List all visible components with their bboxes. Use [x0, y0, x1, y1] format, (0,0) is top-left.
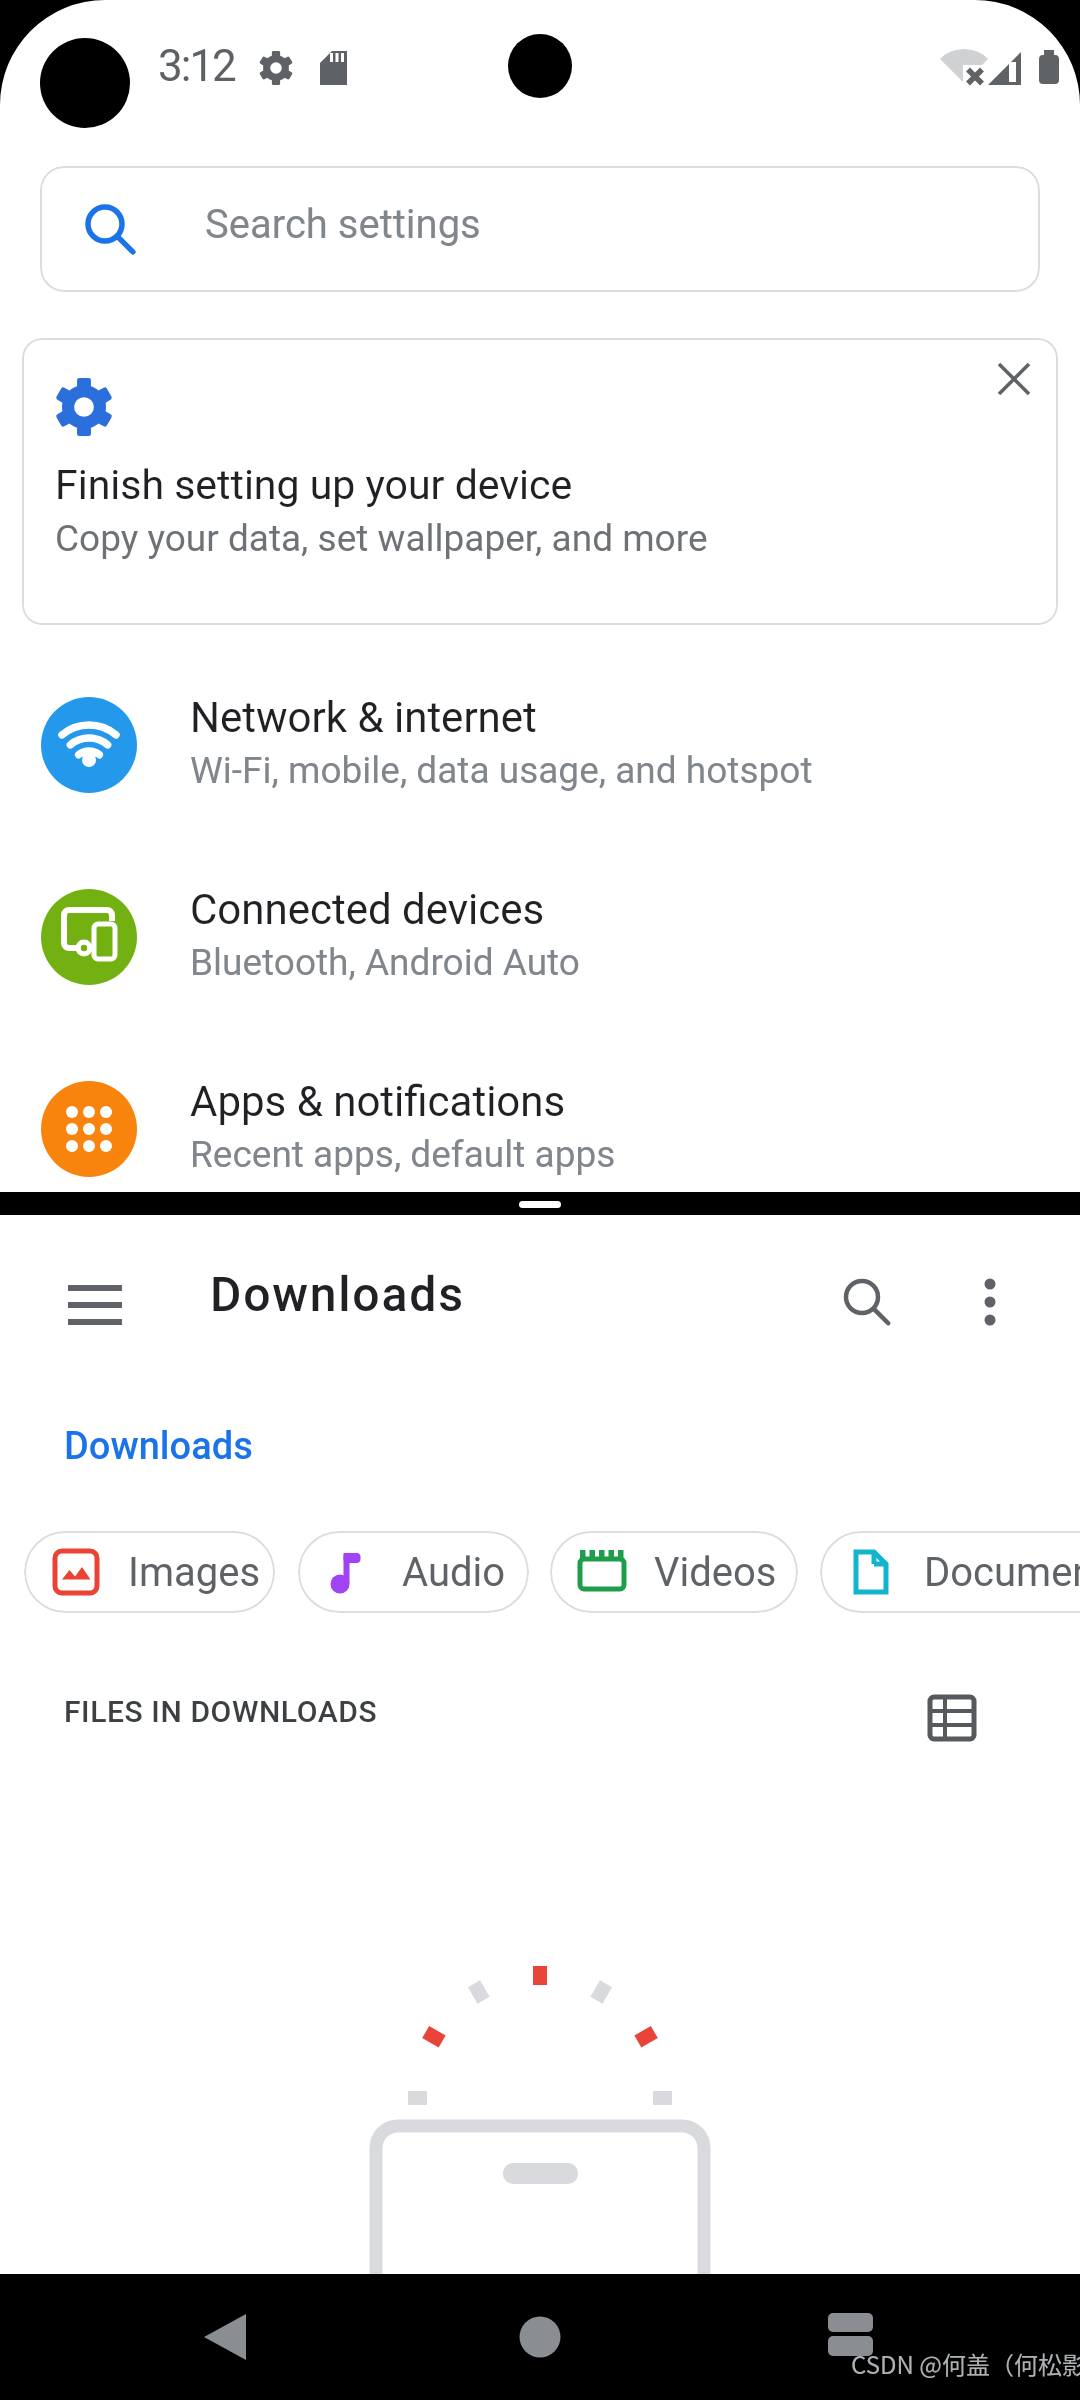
- button[interactable]: [790, 2290, 910, 2384]
- button[interactable]: [982, 348, 1052, 418]
- button[interactable]: Downloads: [50, 1415, 270, 1485]
- staticText: CSDN @何盖（何松影）: [851, 2346, 1080, 2381]
- button[interactable]: Videos: [550, 1531, 798, 1613]
- staticText: Downloads: [64, 1424, 253, 1469]
- staticText: Videos: [654, 1549, 777, 1596]
- button[interactable]: [170, 2290, 290, 2384]
- button[interactable]: Search settings: [40, 166, 1040, 292]
- staticText: 3:12: [158, 40, 235, 92]
- button[interactable]: Finish setting up your device: [22, 338, 1058, 625]
- staticText: FILES IN DOWNLOADS: [64, 1694, 378, 1729]
- button[interactable]: [480, 2290, 600, 2384]
- button[interactable]: Network & internet: [0, 649, 1080, 841]
- button[interactable]: [950, 1258, 1030, 1348]
- staticText: Recent apps, default apps: [190, 1133, 616, 1176]
- staticText: Bluetooth, Android Auto: [190, 941, 580, 984]
- staticText: Downloads: [210, 1266, 465, 1322]
- button[interactable]: Apps & notifications: [0, 1033, 1080, 1225]
- staticText: Apps & notifications: [190, 1077, 566, 1126]
- staticText: Wi-Fi, mobile, data usage, and hotspot: [190, 749, 813, 792]
- button[interactable]: Documents: [820, 1531, 1080, 1613]
- button[interactable]: Audio: [298, 1531, 529, 1613]
- staticText: Copy your data, set wallpaper, and more: [55, 517, 708, 560]
- staticText: Documents: [924, 1549, 1080, 1596]
- staticText: Search settings: [205, 201, 481, 248]
- button[interactable]: [44, 1266, 144, 1342]
- staticText: Finish setting up your device: [55, 461, 573, 509]
- staticText: Network & internet: [190, 693, 537, 742]
- staticText: Images: [128, 1549, 261, 1596]
- staticText: Connected devices: [190, 885, 545, 934]
- button[interactable]: Images: [24, 1531, 275, 1613]
- button[interactable]: Connected devices: [0, 841, 1080, 1033]
- button[interactable]: [920, 1686, 984, 1750]
- staticText: Audio: [402, 1549, 506, 1596]
- button[interactable]: [820, 1258, 916, 1348]
